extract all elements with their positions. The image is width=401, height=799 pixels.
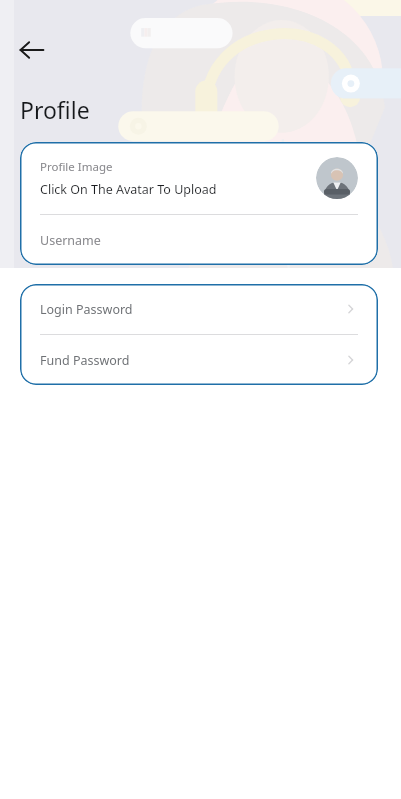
button[interactable]: Fund Password	[20, 335, 378, 385]
button[interactable]: Upload avatar	[316, 157, 358, 199]
staticText: Fund Password	[40, 352, 344, 369]
staticText: Login Password	[40, 301, 344, 318]
staticText: Click On The Avatar To Upload	[40, 181, 217, 198]
button[interactable]: Username	[20, 215, 378, 265]
staticText: Username	[40, 232, 101, 249]
button[interactable]: Profile Image	[20, 142, 378, 214]
button[interactable]: Login Password	[20, 284, 378, 334]
staticText: Profile	[20, 94, 90, 125]
staticText: Profile Image	[40, 159, 113, 175]
button[interactable]: Back	[12, 30, 52, 70]
